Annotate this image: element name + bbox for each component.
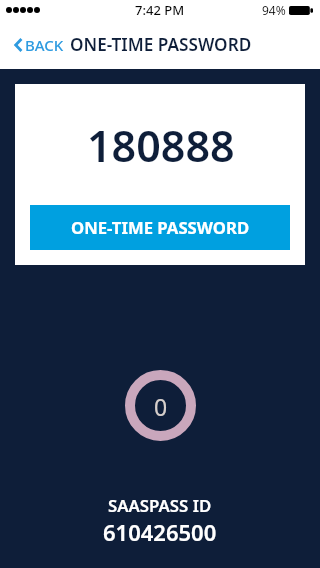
button[interactable]: BACK [0,23,72,67]
staticText: 180888 [87,116,235,175]
staticText: SAASPASS ID [108,494,212,517]
staticText: BACK [25,35,64,55]
staticText: ONE-TIME PASSWORD [71,216,250,239]
staticText: 610426500 [103,517,217,547]
staticText: 0 [154,391,168,422]
button[interactable]: ONE-TIME PASSWORD [30,205,290,250]
staticText: 7:42 PM [135,1,185,19]
staticText: ONE-TIME PASSWORD [70,33,252,56]
staticText: 94% [262,2,286,18]
